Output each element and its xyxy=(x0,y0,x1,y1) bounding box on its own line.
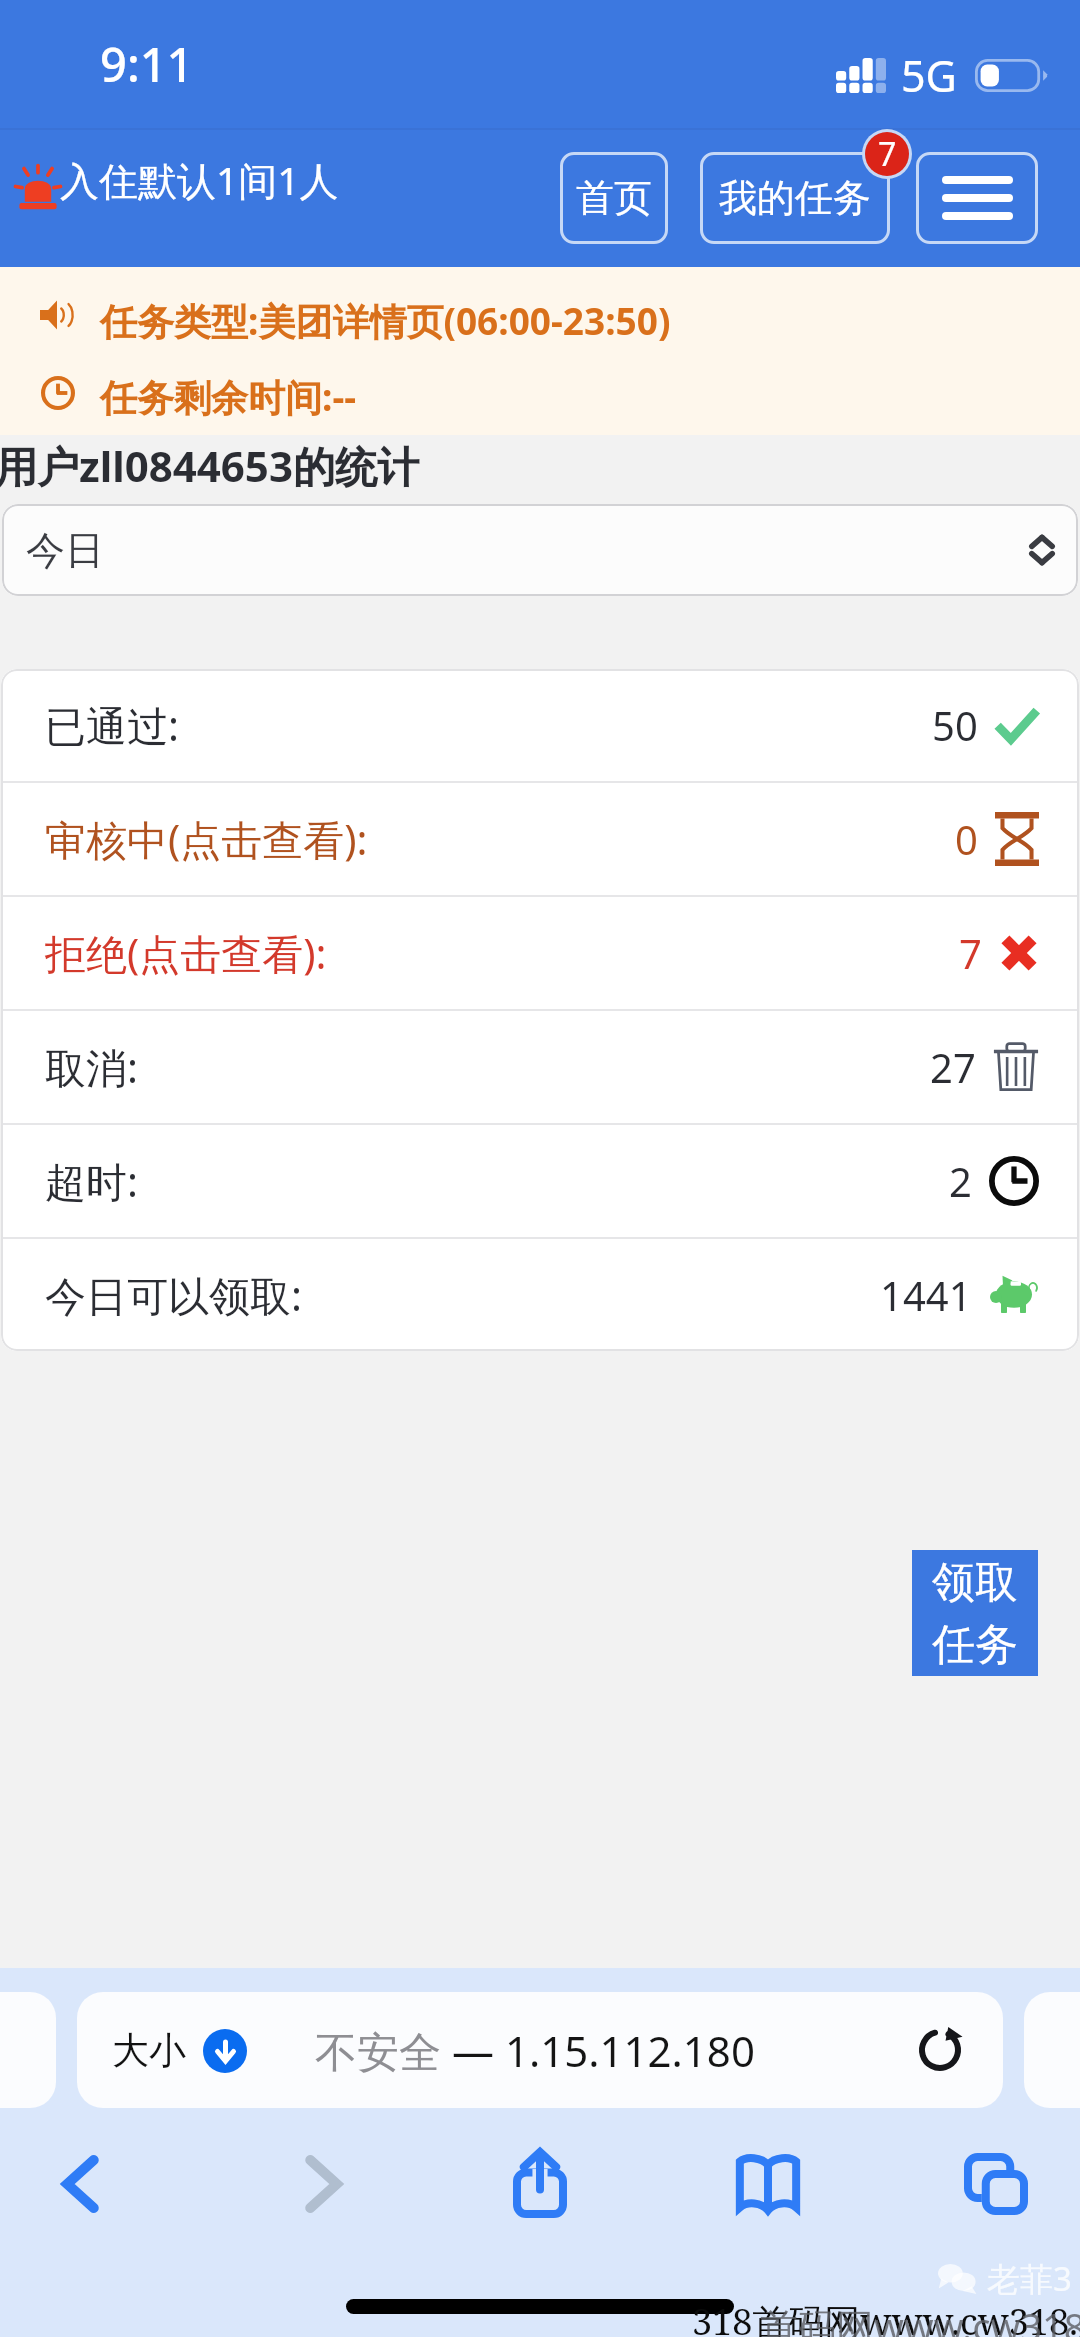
button[interactable]: 我的任务 xyxy=(700,152,890,244)
button[interactable]: Tabs xyxy=(921,2128,1071,2240)
staticText: 大小 xyxy=(112,2027,186,2074)
staticText: 我的任务 xyxy=(719,174,871,222)
staticText: 今日 xyxy=(26,526,104,575)
staticText: 领取 任务 xyxy=(932,1556,1018,1671)
staticText: 50 xyxy=(932,698,978,752)
button[interactable]: Bookmarks xyxy=(693,2128,843,2240)
staticText: 318首码网www.cw318.com xyxy=(692,2297,1080,2337)
staticText: 任务类型:美团详情页(06:00-23:50) xyxy=(100,295,671,346)
staticText: — 1.15.112.180 xyxy=(452,2022,755,2079)
button[interactable]: 取消: xyxy=(1,1011,1079,1123)
staticText: 5G xyxy=(901,46,957,105)
staticText: 1441 xyxy=(880,1268,972,1322)
staticText: 入住默认1间1人 xyxy=(60,153,339,206)
staticText: 老菲3 xyxy=(987,2256,1072,2301)
button[interactable]: Forward xyxy=(249,2128,399,2240)
staticText: 2 xyxy=(949,1154,972,1208)
staticText: 拒绝(点击查看): xyxy=(45,925,327,981)
button[interactable]: 超时: xyxy=(1,1125,1079,1237)
staticText: 27 xyxy=(930,1040,976,1094)
button[interactable]: Share xyxy=(465,2128,615,2240)
staticText: 首码网www.cw318.com xyxy=(760,2300,1080,2337)
button[interactable]: 已通过: xyxy=(1,669,1079,781)
staticText: 用户zll0844653的统计 xyxy=(0,437,419,494)
button[interactable]: 拒绝(点击查看): xyxy=(1,897,1079,1009)
button[interactable]: 大小 xyxy=(77,1992,1003,2108)
staticText: 0 xyxy=(955,812,978,866)
button[interactable]: 审核中(点击查看): xyxy=(1,783,1079,895)
button[interactable]: 领取 任务 xyxy=(912,1550,1038,1676)
button[interactable]: 首页 xyxy=(560,152,668,244)
staticText: 已通过: xyxy=(45,697,179,753)
staticText: 超时: xyxy=(45,1153,138,1209)
staticText: 审核中(点击查看): xyxy=(45,811,368,867)
button[interactable]: Back xyxy=(5,2128,155,2240)
staticText: 7 xyxy=(878,132,897,176)
staticText: 首页 xyxy=(576,174,652,222)
staticText: 取消: xyxy=(45,1039,138,1095)
button[interactable]: 今日可以领取: xyxy=(1,1239,1079,1351)
staticText: 任务剩余时间:-- xyxy=(100,371,357,422)
staticText: 不安全 xyxy=(315,2022,452,2079)
staticText: 9:11 xyxy=(100,32,194,96)
button[interactable]: Menu xyxy=(916,152,1038,244)
staticText: 今日可以领取: xyxy=(45,1267,302,1323)
button[interactable]: 今日 xyxy=(2,504,1078,596)
staticText: 7 xyxy=(959,926,982,980)
